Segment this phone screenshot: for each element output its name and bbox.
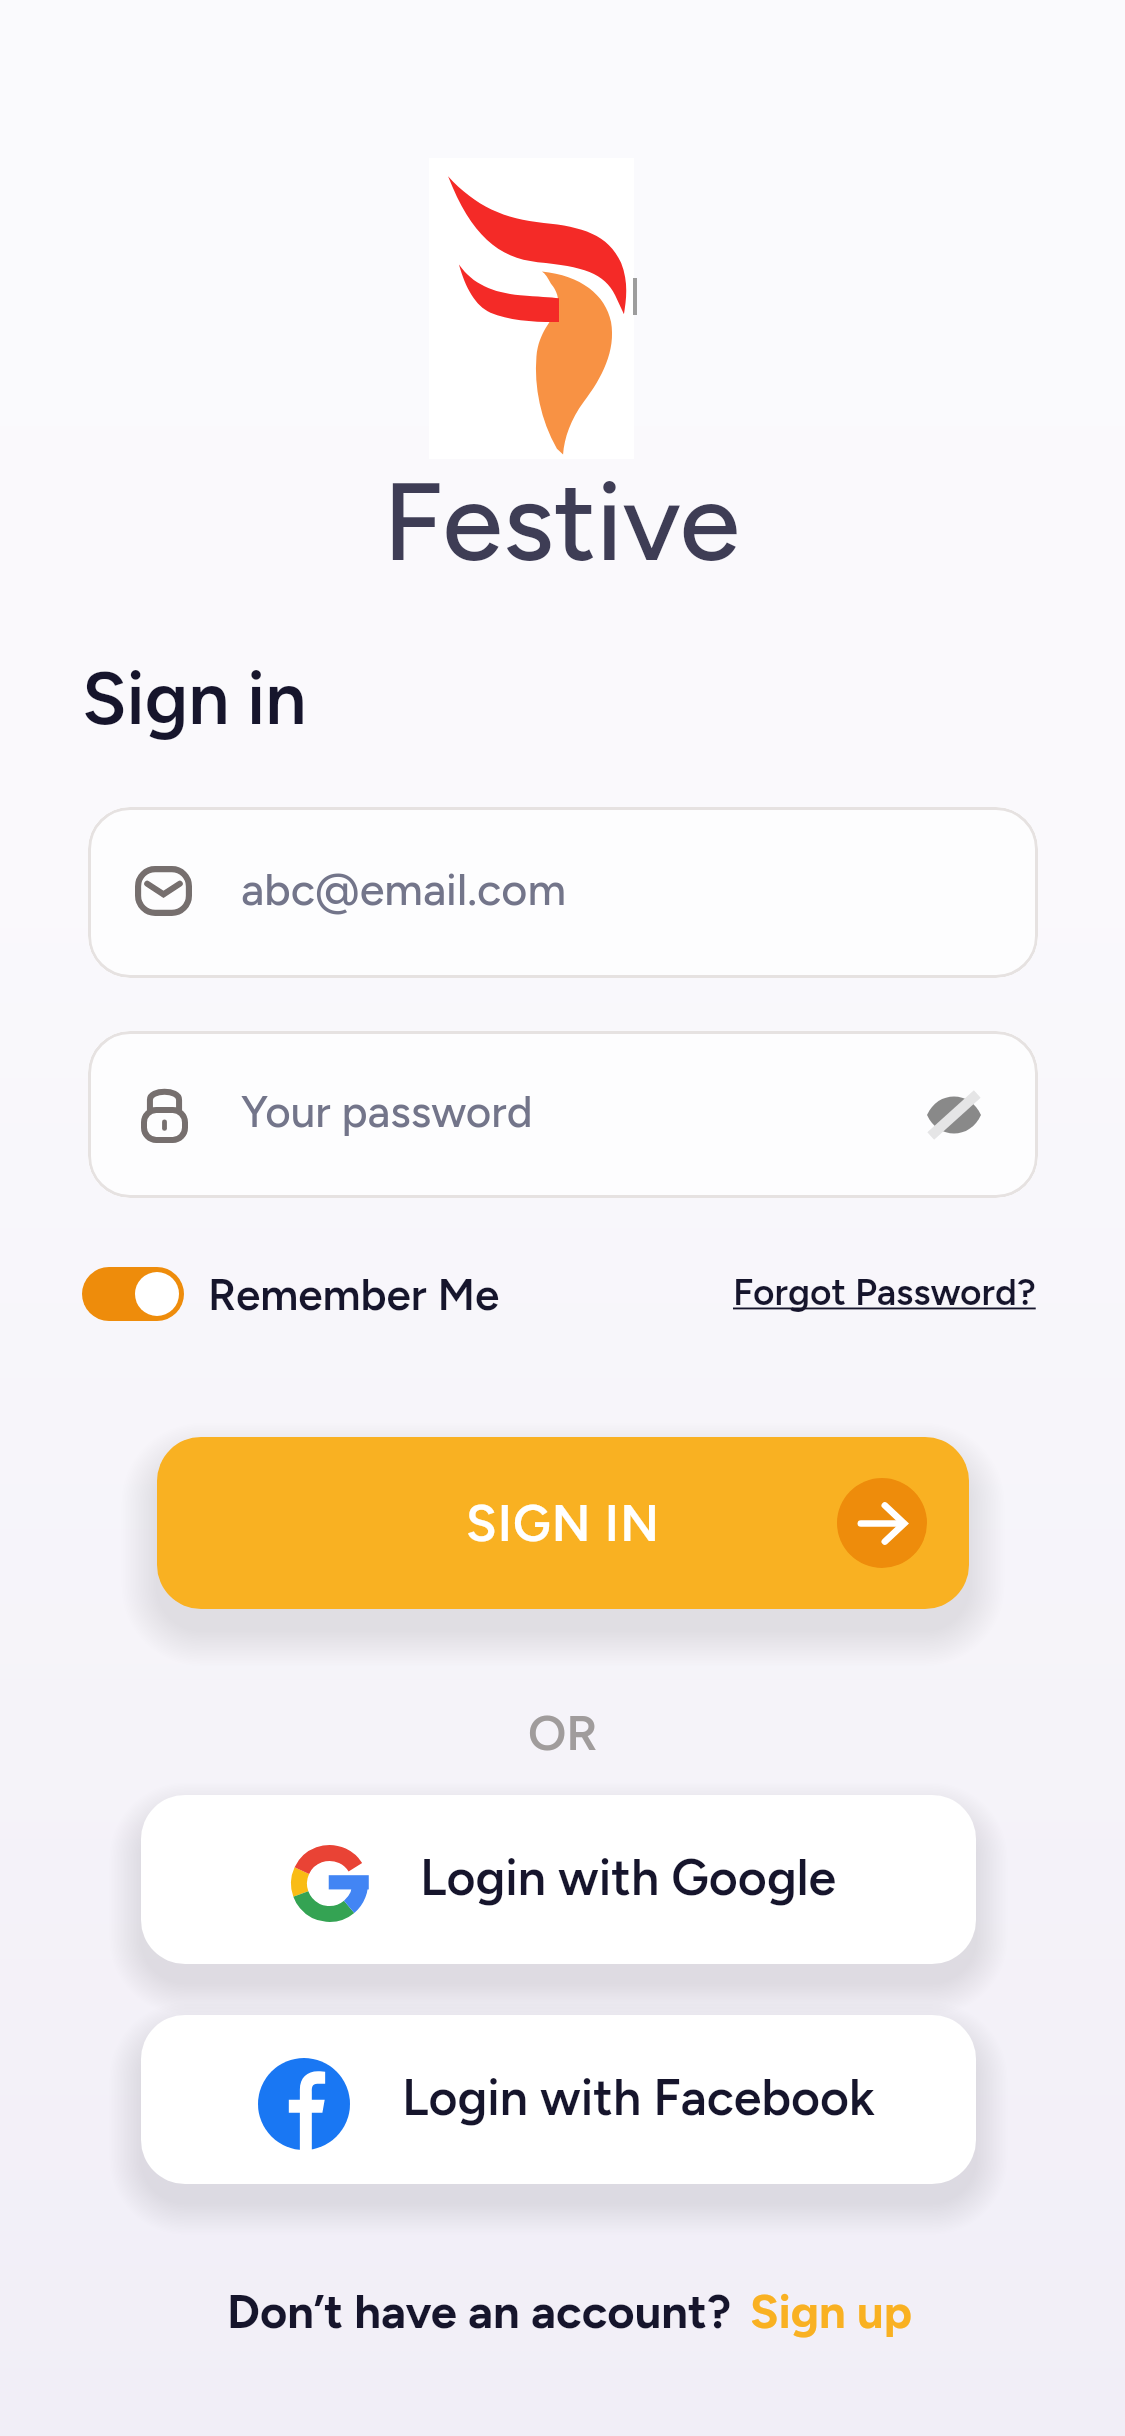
staticText: Login with Facebook: [402, 2067, 875, 2127]
staticText: Remember Me: [208, 1268, 500, 1321]
staticText: abc@email.com: [241, 862, 567, 916]
button[interactable]: Remember Me: [82, 1267, 500, 1321]
button[interactable]: Forgot Password?: [733, 1270, 1036, 1314]
staticText: Forgot Password?: [733, 1270, 1036, 1314]
staticText: OR: [528, 1703, 598, 1762]
staticText: Don’t have an account?: [227, 2283, 732, 2339]
staticText: Sign up: [750, 2283, 912, 2339]
button[interactable]: abc@email.com: [88, 807, 1038, 978]
button[interactable]: Don’t have an account?: [227, 2283, 912, 2339]
button[interactable]: Login with Facebook: [141, 2015, 976, 2184]
staticText: Festive: [383, 455, 740, 587]
staticText: SIGN IN: [466, 1493, 661, 1553]
button[interactable]: SIGN IN: [157, 1437, 969, 1609]
staticText: Your password: [241, 1085, 533, 1138]
staticText: Sign in: [82, 655, 307, 743]
staticText: Login with Google: [420, 1847, 837, 1907]
button[interactable]: Login with Google: [141, 1795, 976, 1964]
button[interactable]: Show password: [908, 1069, 1000, 1161]
button[interactable]: Your password: [88, 1031, 1038, 1198]
